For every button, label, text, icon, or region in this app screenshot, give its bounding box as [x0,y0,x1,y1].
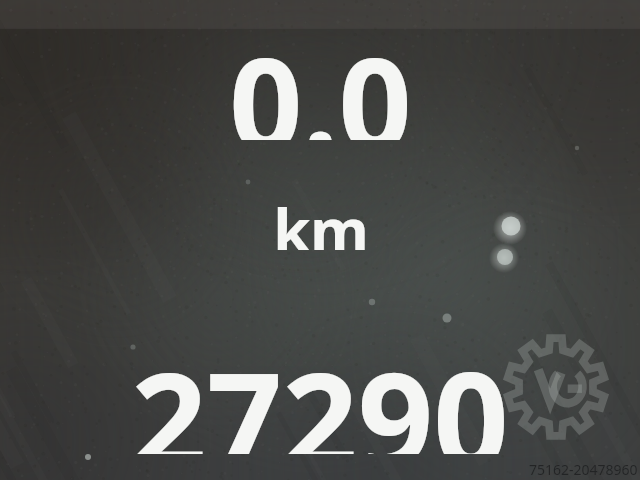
staticText: 0.0 [229,14,412,140]
staticText: 272903 [112,328,528,454]
other: Dealer watermark [502,333,610,441]
staticText: km [273,188,369,250]
staticText: 75162-20478960 [529,460,638,479]
